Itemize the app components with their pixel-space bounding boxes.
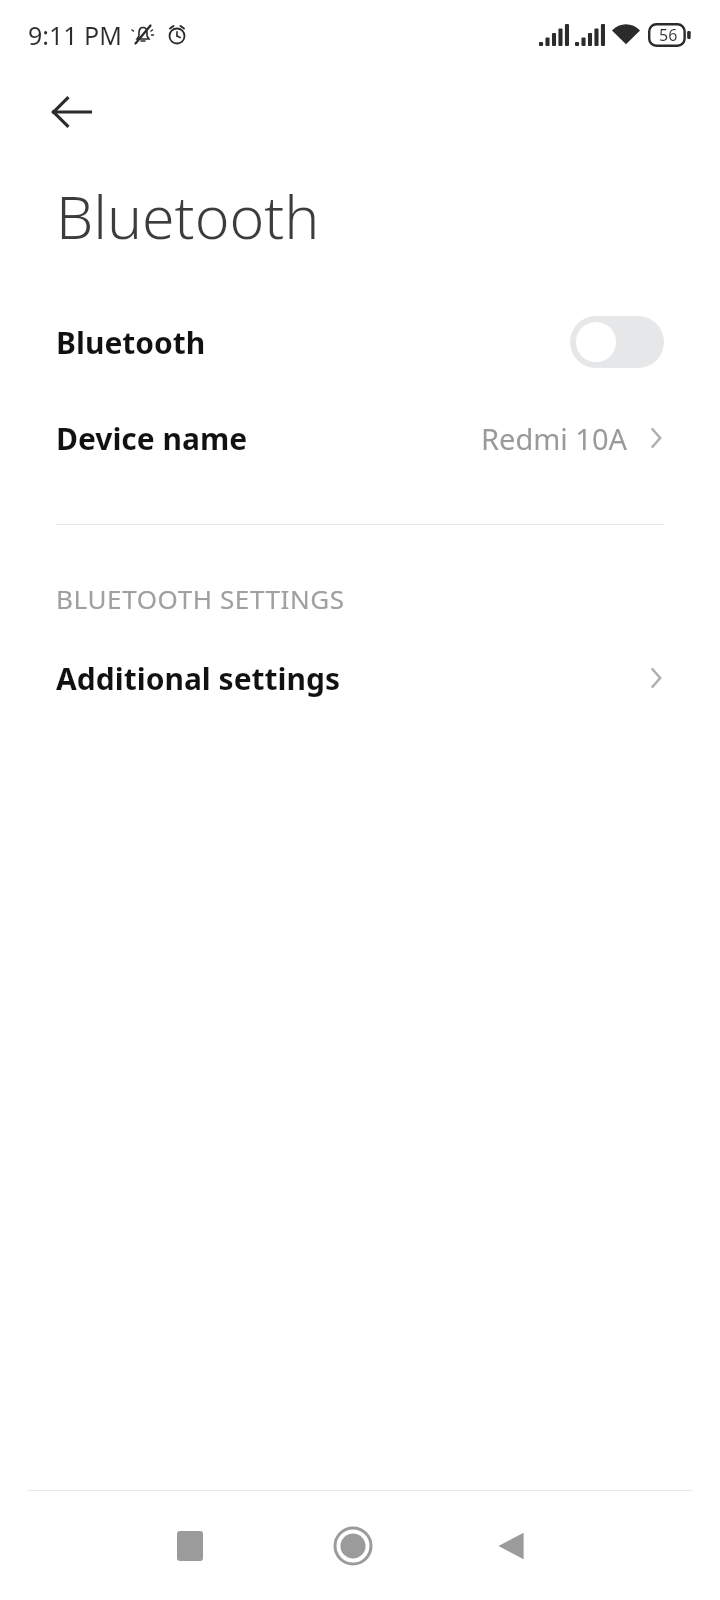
staticText: Bluetooth <box>56 176 320 256</box>
staticText: Additional settings <box>56 658 341 699</box>
button[interactable]: Home <box>299 1492 407 1600</box>
staticText: Bluetooth <box>56 322 206 363</box>
button[interactable]: Bluetooth toggle, off <box>570 316 664 368</box>
staticText: 9:11 PM <box>28 18 122 52</box>
button[interactable]: Recents <box>136 1492 244 1600</box>
button[interactable]: Bluetooth <box>0 294 720 390</box>
staticText: Redmi 10A <box>481 419 628 458</box>
button[interactable]: Additional settings <box>0 630 720 726</box>
button[interactable]: Back <box>44 84 100 140</box>
staticText: 56 <box>659 24 678 46</box>
staticText: Device name <box>56 418 248 459</box>
staticText: BLUETOOTH SETTINGS <box>56 581 345 616</box>
button[interactable]: Back <box>457 1492 565 1600</box>
button[interactable]: Device name <box>0 390 720 486</box>
